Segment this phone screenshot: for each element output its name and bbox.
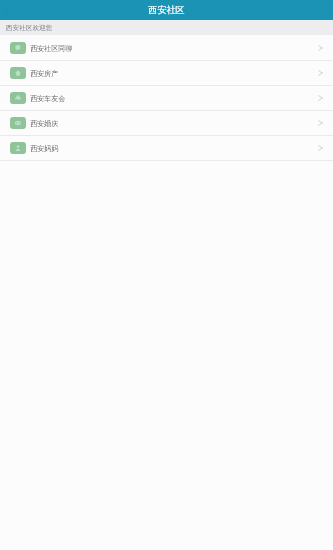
button[interactable]: 西安社区同聊 <box>0 36 333 61</box>
button[interactable]: 西安车友会 <box>0 86 333 111</box>
staticText: 西安婚庆 <box>30 119 59 128</box>
staticText: 西安房产 <box>30 69 59 78</box>
staticText: 西安社区 <box>148 4 185 16</box>
staticText: 西安社区同聊 <box>30 44 73 53</box>
staticText: 西安车友会 <box>30 94 66 103</box>
staticText: 西安社区欢迎您 <box>6 24 53 32</box>
staticText: 西安妈妈 <box>30 144 59 153</box>
button[interactable]: 西安妈妈 <box>0 136 333 161</box>
button[interactable]: 西安婚庆 <box>0 111 333 136</box>
button[interactable]: 西安房产 <box>0 61 333 86</box>
